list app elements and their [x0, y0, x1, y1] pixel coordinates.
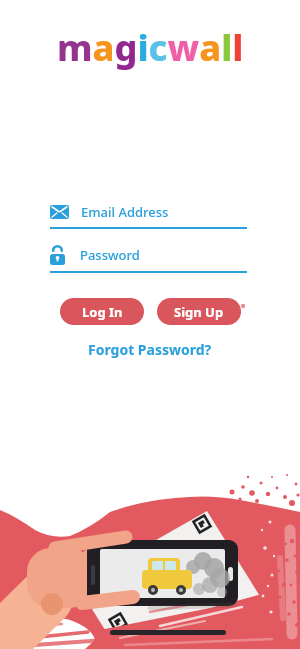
- button[interactable]: Sign Up: [157, 298, 241, 325]
- staticText: magicwall: [57, 23, 244, 72]
- staticText: Email Address: [81, 203, 169, 221]
- button[interactable]: Password: [50, 245, 140, 265]
- staticText: Sign Up: [174, 303, 224, 321]
- button[interactable]: Email Address: [50, 203, 169, 221]
- button[interactable]: Log In: [60, 298, 144, 325]
- staticText: Forgot Password?: [88, 340, 212, 359]
- staticText: Log In: [82, 303, 123, 321]
- button[interactable]: Forgot Password?: [88, 340, 212, 359]
- staticText: Password: [80, 246, 140, 264]
